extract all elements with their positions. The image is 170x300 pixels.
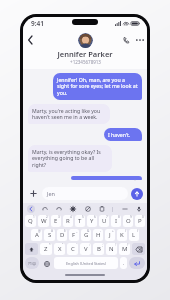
staticText: P (138, 217, 142, 225)
staticText: U (102, 217, 107, 225)
button[interactable]: X (54, 243, 65, 255)
staticText: B (97, 245, 101, 253)
staticText: K (120, 231, 124, 239)
staticText: W (41, 217, 47, 225)
button[interactable]: V (80, 243, 91, 255)
button[interactable]: Settings (68, 204, 77, 213)
staticText: C (71, 245, 75, 253)
staticText: 5 (82, 215, 84, 219)
button[interactable]: Send (131, 188, 143, 200)
staticText: X (58, 245, 62, 253)
button[interactable]: More options (133, 33, 147, 47)
button[interactable]: Voice input (134, 204, 143, 213)
staticText: O (126, 217, 131, 225)
button[interactable]: Y (87, 215, 97, 227)
staticText: : (89, 243, 90, 247)
button[interactable]: P (135, 215, 145, 227)
staticText: 4 (70, 215, 72, 219)
button[interactable]: ?1☺ (25, 257, 39, 269)
staticText: 0 (142, 215, 144, 219)
staticText: N (109, 245, 114, 253)
staticText: F (72, 231, 76, 239)
button[interactable]: Stickers (83, 204, 92, 213)
staticText: +12345678913 (70, 59, 101, 65)
button[interactable]: B (93, 243, 104, 255)
button[interactable]: Jennifer! Oh, man, are you a sight for s… (53, 73, 142, 100)
button[interactable]: R (63, 215, 73, 227)
button[interactable]: Shift (25, 243, 38, 255)
staticText: @ (38, 229, 41, 233)
button[interactable]: C (67, 243, 78, 255)
button[interactable]: Add attachment (27, 187, 40, 200)
staticText: ( (125, 229, 126, 233)
button[interactable]: Enter (129, 257, 145, 269)
button[interactable]: E (51, 215, 61, 227)
staticText: 9:41 (31, 19, 44, 28)
button[interactable]: . (120, 257, 127, 269)
button[interactable]: Marty, is everything okay? Is everything… (28, 145, 112, 172)
staticText: Q (28, 217, 33, 225)
button[interactable]: M (119, 243, 130, 255)
button[interactable]: Call (119, 33, 133, 47)
staticText: Jen (47, 190, 56, 197)
staticText: $ (64, 229, 66, 233)
staticText: L (132, 231, 136, 239)
button[interactable]: O (123, 215, 133, 227)
button[interactable]: Collapse toolbar (27, 205, 35, 213)
staticText: M (122, 245, 128, 253)
staticText: ' (76, 243, 77, 247)
button[interactable]: N (106, 243, 117, 255)
button[interactable]: S (44, 229, 55, 241)
staticText: - (100, 229, 102, 233)
staticText: 3 (58, 215, 60, 219)
button[interactable]: Contact photo (78, 33, 93, 48)
staticText: H (96, 231, 101, 239)
button[interactable]: I (111, 215, 121, 227)
staticText: I (115, 217, 118, 225)
button[interactable]: Backspace (132, 243, 145, 255)
button[interactable]: Q (25, 215, 36, 227)
staticText: D (60, 231, 65, 239)
button[interactable]: Z (40, 243, 52, 255)
staticText: ?1☺ (28, 261, 37, 266)
button[interactable]: Jen (42, 187, 128, 200)
button[interactable]: F (69, 229, 79, 241)
button[interactable]: K (117, 229, 127, 241)
staticText: Jennifer! Oh, man, are you a sight for s… (57, 76, 138, 97)
staticText: T (78, 217, 82, 225)
staticText: + (112, 229, 114, 233)
button[interactable]: A (31, 229, 42, 241)
button[interactable]: U (99, 215, 109, 227)
button[interactable]: Clipboard (97, 204, 106, 213)
staticText: _ (76, 229, 78, 233)
button[interactable]: L (129, 229, 139, 241)
button[interactable]: T (75, 215, 85, 227)
staticText: 9 (130, 215, 132, 219)
button[interactable]: Redo (54, 204, 63, 213)
staticText: & (87, 229, 90, 233)
button[interactable]: Undo (40, 204, 49, 213)
staticText: # (51, 229, 54, 233)
button[interactable]: H (93, 229, 103, 241)
staticText: Jennifer Parker (57, 49, 113, 59)
button[interactable]: Back (23, 33, 37, 47)
button[interactable]: Marty, you're acting like you haven't se… (28, 104, 110, 124)
button[interactable]: Change language (41, 258, 52, 269)
button[interactable]: G (81, 229, 91, 241)
staticText: 6 (94, 215, 96, 219)
button[interactable]: D (57, 229, 67, 241)
staticText: ) (137, 229, 138, 233)
staticText: 2 (46, 215, 48, 219)
staticText: * (49, 243, 51, 247)
staticText: | (111, 205, 115, 213)
button[interactable]: English (United States) (54, 257, 118, 269)
staticText: ; (102, 243, 103, 247)
button[interactable]: I haven't. (104, 128, 142, 141)
button[interactable]: Oh, yeah. Everything's great. (71, 176, 142, 180)
button[interactable]: J (105, 229, 115, 241)
staticText: 8 (118, 215, 120, 219)
button[interactable]: Text edit (120, 204, 129, 213)
staticText: E (54, 217, 58, 225)
staticText: " (62, 243, 64, 247)
button[interactable]: W (38, 215, 49, 227)
